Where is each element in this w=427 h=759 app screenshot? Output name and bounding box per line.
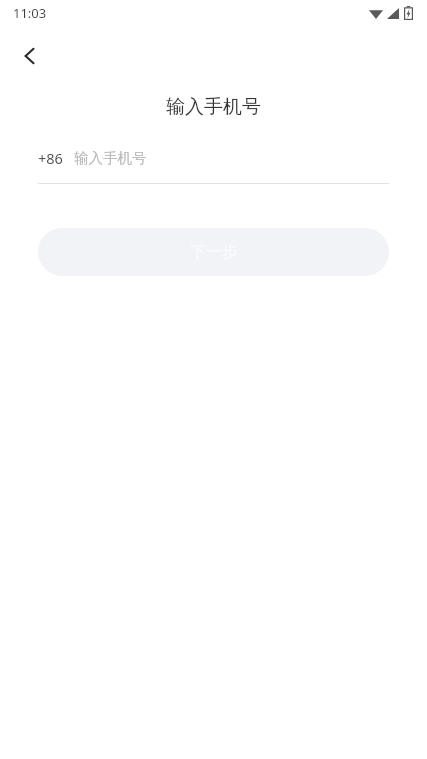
- button[interactable]: Back: [8, 34, 52, 78]
- button[interactable]: +86: [38, 143, 389, 173]
- staticText: +86: [38, 148, 63, 168]
- staticText: 11:03: [13, 4, 47, 22]
- staticText: 输入手机号: [0, 95, 427, 119]
- staticText: 输入手机号: [74, 149, 147, 167]
